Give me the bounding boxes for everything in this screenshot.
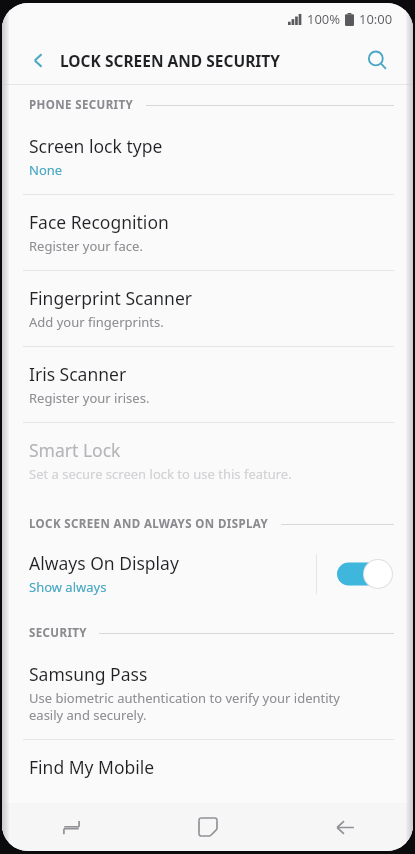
staticText: Screen lock type [29,134,163,158]
button[interactable]: Face Recognition [2,195,413,270]
staticText: Set a secure screen lock to use this fea… [29,465,292,483]
staticText: Iris Scanner [29,362,127,386]
button[interactable]: Samsung Pass [2,647,413,739]
button[interactable]: Screen lock type [2,119,413,194]
staticText: LOCK SCREEN AND ALWAYS ON DISPLAY [29,516,269,532]
staticText: 10:00 [359,10,393,28]
staticText: Fingerprint Scanner [29,286,193,310]
staticText: Show always [29,578,107,596]
button[interactable]: Search [355,38,399,82]
staticText: 100% [307,10,341,28]
button[interactable]: Iris Scanner [2,347,413,422]
staticText: Register your face. [29,237,143,255]
staticText: Always On Display [29,551,179,575]
button[interactable]: Back [16,38,60,82]
staticText: None [29,161,63,179]
button[interactable]: Always On Display [2,538,413,609]
staticText: Smart Lock [29,438,121,462]
button[interactable]: Always On Display toggle [337,559,393,589]
button[interactable]: Find My Mobile [2,740,413,794]
staticText: Samsung Pass [29,662,148,686]
staticText: Face Recognition [29,210,169,234]
staticText: Register your irises. [29,389,150,407]
button[interactable]: Home [180,805,236,849]
button: Smart Lock [2,423,413,498]
staticText: LOCK SCREEN AND SECURITY [60,50,280,71]
staticText: Add your fingerprints. [29,313,164,331]
button[interactable]: Back [317,805,373,849]
button[interactable]: Recents [43,805,99,849]
staticText: Use biometric authentication to verify y… [29,689,340,724]
staticText: Find My Mobile [29,755,155,779]
button[interactable]: Fingerprint Scanner [2,271,413,346]
staticText: PHONE SECURITY [29,97,134,113]
staticText: SECURITY [29,625,87,641]
